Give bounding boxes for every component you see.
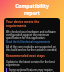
staticText: Recommended next steps [6, 54, 45, 58]
staticText: We checked your hardware and software co… [6, 30, 58, 39]
staticText: Update to the latest version for the bes… [6, 60, 58, 66]
staticText: Compatibility report [15, 3, 49, 16]
staticText: Some optional features may require addit… [9, 68, 58, 72]
staticText: Read the full technical requirements [6, 40, 51, 44]
staticText: All of the core modules are supported on… [6, 45, 58, 51]
staticText: Your device meets the requirements [6, 20, 58, 28]
